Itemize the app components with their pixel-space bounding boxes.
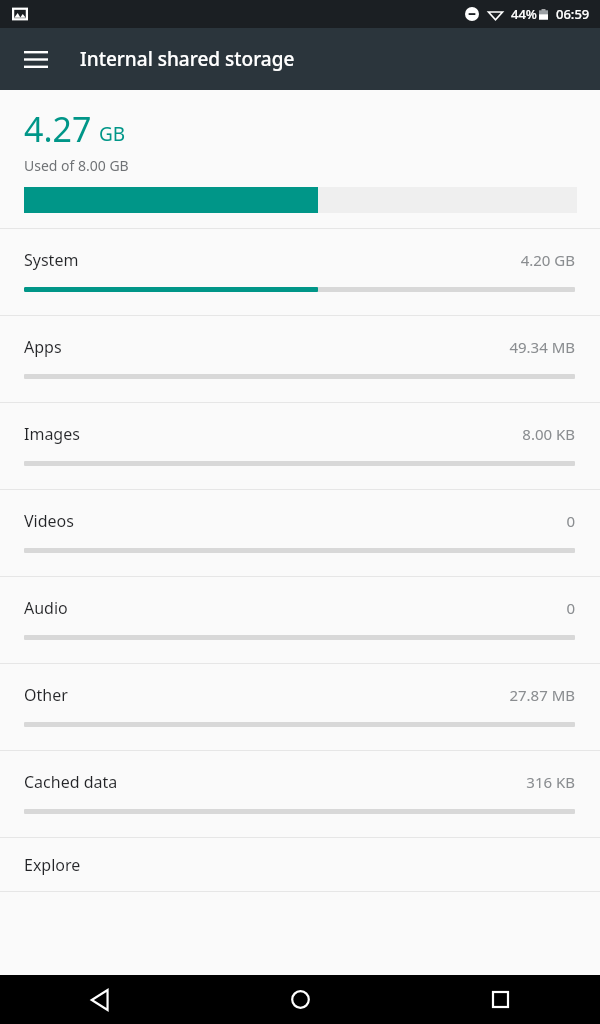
staticText: 0 <box>566 511 575 531</box>
staticText: 316 KB <box>526 772 575 792</box>
staticText: 06:59 <box>556 5 590 23</box>
button[interactable]: Apps <box>0 316 600 402</box>
staticText: Explore <box>24 854 81 876</box>
button[interactable]: Back <box>0 975 200 1024</box>
staticText: 4.27 <box>24 106 92 152</box>
staticText: 27.87 MB <box>509 685 575 705</box>
staticText: 44% <box>511 5 537 23</box>
staticText: 8.00 KB <box>522 424 575 444</box>
button[interactable]: Explore <box>0 838 600 891</box>
button[interactable]: Videos <box>0 490 600 576</box>
staticText: 4.20 GB <box>520 250 575 270</box>
staticText: System <box>24 249 79 271</box>
button[interactable]: Audio <box>0 577 600 663</box>
button[interactable]: Other <box>0 664 600 750</box>
staticText: Audio <box>24 597 68 619</box>
staticText: Cached data <box>24 771 118 793</box>
button[interactable]: Home <box>200 975 400 1024</box>
button[interactable]: System <box>0 229 600 315</box>
staticText: Used of 8.00 GB <box>24 156 129 175</box>
staticText: 0 <box>566 598 575 618</box>
staticText: GB <box>99 121 126 147</box>
staticText: Videos <box>24 510 74 532</box>
staticText: Other <box>24 684 68 706</box>
button[interactable]: Open navigation menu <box>12 35 60 83</box>
staticText: 49.34 MB <box>509 337 575 357</box>
button[interactable]: Recent apps <box>400 975 600 1024</box>
staticText: Apps <box>24 336 62 358</box>
button[interactable]: Cached data <box>0 751 600 837</box>
button[interactable]: Images <box>0 403 600 489</box>
staticText: Internal shared storage <box>80 46 295 72</box>
staticText: Images <box>24 423 80 445</box>
